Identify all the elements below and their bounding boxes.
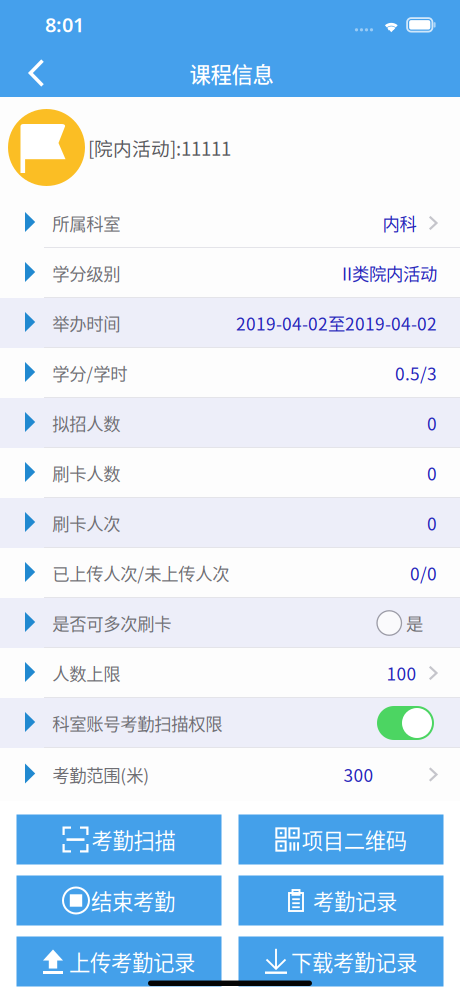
staticText: 0	[427, 510, 437, 536]
staticText: 是否可多次刷卡	[52, 610, 171, 636]
button[interactable]: 人数上限	[0, 648, 460, 698]
staticText: 学分/学时	[52, 360, 127, 386]
staticText: 100	[386, 660, 416, 686]
staticText: 科室账号考勤扫描权限	[52, 710, 222, 736]
staticText: 考勤范围(米)	[52, 762, 149, 787]
staticText: 2019-04-02至2019-04-02	[236, 310, 437, 336]
button[interactable]: 下载考勤记录	[238, 936, 443, 986]
staticText: 0.5/3	[395, 360, 437, 386]
staticText: 刷卡人次	[52, 510, 120, 536]
staticText: 0	[427, 410, 437, 436]
button[interactable]: 刷卡人次	[0, 498, 460, 548]
staticText: 下载考勤记录	[291, 946, 417, 977]
staticText: II类院内活动	[342, 260, 437, 286]
staticText: 结束考勤	[91, 885, 175, 916]
staticText: 上传考勤记录	[69, 946, 195, 977]
button[interactable]: 项目二维码	[238, 814, 443, 864]
button[interactable]: 举办时间	[0, 298, 460, 348]
button[interactable]: 学分/学时	[0, 348, 460, 398]
button[interactable]: 科室账号考勤扫描权限	[0, 698, 460, 748]
button[interactable]: 已上传人次/未上传人次	[0, 548, 460, 598]
staticText: 内科	[382, 210, 416, 236]
staticText: 学分级别	[52, 260, 120, 286]
staticText: 0/0	[410, 560, 437, 586]
staticText: 是	[406, 610, 423, 636]
staticText: 拟招人数	[52, 410, 120, 436]
button[interactable]: 考勤记录	[238, 875, 443, 925]
staticText: 项目二维码	[302, 824, 407, 855]
staticText: 0	[427, 460, 437, 486]
staticText: 所属科室	[52, 210, 120, 236]
staticText: 考勤记录	[313, 885, 397, 916]
staticText: 8:01	[45, 11, 84, 38]
button[interactable]: 考勤扫描	[16, 814, 221, 864]
staticText: 刷卡人数	[52, 460, 120, 486]
staticText: 人数上限	[52, 660, 120, 686]
button[interactable]: 学分级别	[0, 248, 460, 298]
staticText: 考勤扫描	[91, 824, 175, 855]
button[interactable]: 所属科室	[0, 198, 460, 248]
button[interactable]: 是否可多次刷卡	[0, 598, 460, 648]
staticText: 课程信息	[189, 58, 273, 89]
staticText: [院内活动]:11111	[88, 134, 231, 161]
staticText: 举办时间	[52, 310, 120, 336]
button[interactable]: 刷卡人数	[0, 448, 460, 498]
button[interactable]: 考勤范围(米)	[0, 748, 460, 801]
button[interactable]: 返回	[0, 48, 62, 97]
button[interactable]: 拟招人数	[0, 398, 460, 448]
button[interactable]: 结束考勤	[16, 875, 221, 925]
button[interactable]: 上传考勤记录	[16, 936, 221, 986]
staticText: 已上传人次/未上传人次	[52, 560, 229, 586]
staticText: 300	[343, 762, 373, 787]
